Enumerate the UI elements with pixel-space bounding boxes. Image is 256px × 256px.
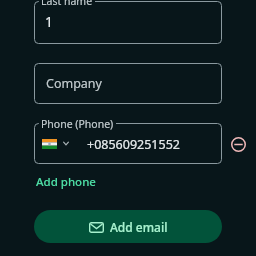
staticText: Add phone xyxy=(36,174,96,190)
staticText: Add email xyxy=(110,219,168,235)
staticText: +085609251552 xyxy=(87,136,180,153)
button[interactable]: Remove phone xyxy=(227,133,249,155)
staticText: Last name xyxy=(41,0,93,8)
button[interactable]: Add email xyxy=(34,210,222,243)
button[interactable]: 1 xyxy=(34,1,222,44)
staticText: Company xyxy=(46,75,102,92)
staticText: 1 xyxy=(45,12,54,31)
staticText: Phone (Phone) xyxy=(41,117,114,131)
button[interactable]: +085609251552 xyxy=(34,123,222,164)
button[interactable]: Company xyxy=(34,63,222,104)
button[interactable]: Add phone xyxy=(36,173,96,191)
